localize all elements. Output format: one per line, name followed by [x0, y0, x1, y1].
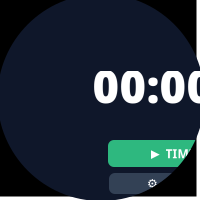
staticText: 00:00	[92, 56, 200, 116]
button[interactable]: ▶	[108, 140, 200, 167]
staticText: TIME ON	[165, 145, 200, 161]
staticText: ⚙	[147, 177, 158, 190]
staticText: ▶	[150, 147, 159, 160]
staticText: SETTINGS	[164, 175, 200, 191]
button[interactable]: ⚙	[109, 173, 200, 194]
